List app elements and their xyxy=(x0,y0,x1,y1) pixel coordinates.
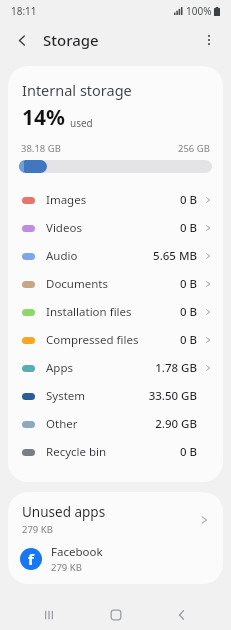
staticText: 279 KB xyxy=(51,561,82,574)
button[interactable]: Compressed files xyxy=(8,326,223,354)
button[interactable]: Installation files xyxy=(8,298,223,326)
staticText: 0 B xyxy=(179,276,197,292)
staticText: 18:11 xyxy=(11,4,37,18)
staticText: used xyxy=(70,116,93,130)
staticText: f xyxy=(28,549,34,569)
staticText: 100% xyxy=(186,4,212,18)
staticText: Apps xyxy=(46,360,74,376)
button[interactable]: More options xyxy=(196,27,222,53)
staticText: 0 B xyxy=(179,220,197,236)
staticText: 14% xyxy=(22,103,65,132)
staticText: Audio xyxy=(46,248,78,264)
button[interactable]: Home xyxy=(99,600,133,630)
staticText: Compressed files xyxy=(46,332,139,348)
button[interactable]: Apps xyxy=(8,354,223,382)
staticText: 1.78 GB xyxy=(155,360,197,376)
button[interactable]: Recents xyxy=(32,600,66,630)
button[interactable]: Documents xyxy=(8,270,223,298)
button[interactable]: Back xyxy=(165,600,199,630)
staticText: 2.90 GB xyxy=(155,416,197,432)
staticText: System xyxy=(46,388,86,404)
staticText: Internal storage xyxy=(22,80,132,100)
staticText: Images xyxy=(46,192,87,208)
staticText: Documents xyxy=(46,276,108,292)
staticText: 0 B xyxy=(179,332,197,348)
button[interactable]: Back xyxy=(9,27,35,53)
staticText: 5.65 MB xyxy=(153,248,197,264)
staticText: Unused apps xyxy=(22,503,106,521)
button[interactable]: Images xyxy=(8,186,223,214)
staticText: Other xyxy=(46,416,78,432)
staticText: 279 KB xyxy=(22,523,53,536)
button[interactable]: Unused apps xyxy=(8,492,223,544)
staticText: 0 B xyxy=(179,192,197,208)
button[interactable]: Other xyxy=(8,410,223,438)
staticText: Videos xyxy=(46,220,82,236)
staticText: 256 GB xyxy=(178,142,210,155)
staticText: 38.18 GB xyxy=(21,142,61,155)
staticText: Storage xyxy=(43,30,99,50)
button[interactable]: System xyxy=(8,382,223,410)
staticText: Facebook xyxy=(51,544,103,560)
staticText: 33.50 GB xyxy=(148,388,197,404)
button[interactable]: Recycle bin xyxy=(8,438,223,466)
button[interactable]: f xyxy=(8,544,223,584)
button[interactable]: Audio xyxy=(8,242,223,270)
staticText: 0 B xyxy=(179,444,197,460)
staticText: 0 B xyxy=(179,304,197,320)
staticText: Installation files xyxy=(46,304,132,320)
button[interactable]: Videos xyxy=(8,214,223,242)
staticText: Recycle bin xyxy=(46,444,107,460)
